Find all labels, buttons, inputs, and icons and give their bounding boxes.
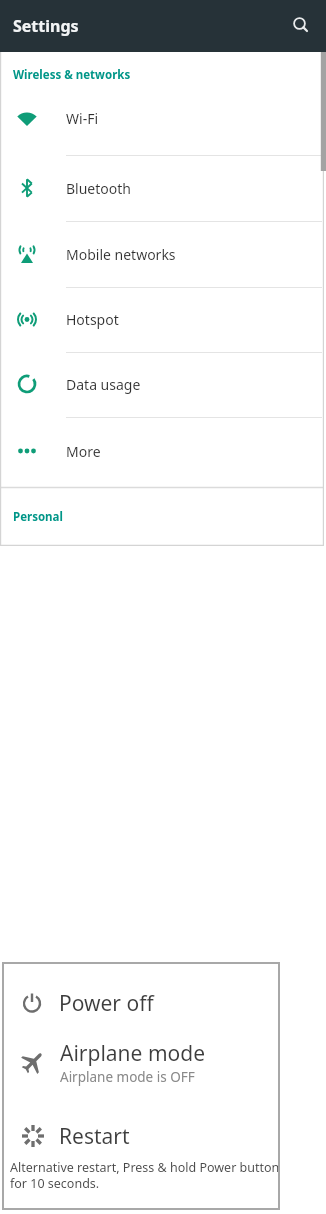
button[interactable]: Wi-Fi (0, 85, 324, 151)
staticText: Wireless & networks (13, 67, 131, 83)
staticText: Settings (13, 15, 79, 37)
staticText: Airplane mode is OFF (60, 1068, 195, 1086)
staticText: Wi-Fi (66, 109, 99, 128)
staticText: More (66, 442, 101, 461)
staticText: Hotspot (66, 310, 119, 329)
staticText: Mobile networks (66, 245, 176, 264)
button[interactable] (290, 15, 312, 37)
staticText: Restart (59, 1122, 130, 1151)
staticText: Airplane mode (60, 1039, 206, 1068)
button[interactable]: Restart (2, 1111, 280, 1161)
staticText: Data usage (66, 375, 141, 394)
button[interactable]: Power off (2, 978, 280, 1028)
staticText: Power off (59, 989, 154, 1018)
staticText: Bluetooth (66, 179, 131, 198)
button[interactable]: Data usage (0, 351, 324, 417)
button[interactable]: Bluetooth (0, 155, 324, 221)
staticText: Alternative restart, Press & hold Power … (10, 1159, 280, 1192)
button[interactable]: Hotspot (0, 286, 324, 352)
button[interactable]: Mobile networks (0, 221, 324, 287)
button[interactable]: More (0, 418, 324, 484)
button[interactable]: Settings (0, 0, 326, 52)
staticText: Personal (13, 509, 63, 525)
button[interactable]: Airplane mode (2, 1036, 280, 1088)
